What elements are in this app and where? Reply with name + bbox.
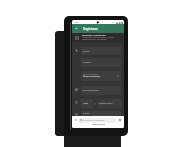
button[interactable]: Back	[72, 24, 124, 33]
staticText: Registrace	[83, 27, 99, 31]
staticText: Zadejte údaje, které jsou uvedeny na vaš…	[82, 36, 114, 38]
staticText: Registrace a zabezpečení	[82, 34, 106, 37]
staticText: Datum narození	[83, 89, 99, 92]
button[interactable]: Registrace a zabezpečení	[72, 33, 123, 42]
staticText: Jméno	[83, 50, 90, 53]
staticText: Země vydání dokladu	[83, 73, 99, 75]
staticText: 4G	[112, 21, 115, 24]
button[interactable]: Příjmení	[81, 58, 121, 67]
staticText: E-mail	[83, 112, 90, 115]
button[interactable]: +420	[81, 99, 93, 108]
staticText: +420	[83, 102, 88, 105]
button[interactable]: m.zkouska.cz/registrace	[78, 118, 116, 123]
button[interactable]: Back	[75, 27, 78, 30]
button[interactable]: Jméno	[81, 47, 121, 55]
button[interactable]: Země vydání dokladu	[81, 71, 121, 81]
button[interactable]: Datum narození	[81, 86, 121, 95]
staticText: Příjmení	[83, 61, 92, 64]
staticText: dokladu totožnosti. Více informací	[82, 38, 108, 40]
staticText: 17:35	[73, 21, 79, 24]
staticText: Mobilní telefon	[99, 102, 113, 105]
staticText: m.zkouska.cz/registrace	[83, 119, 105, 122]
staticText: Česká republika	[83, 75, 101, 78]
button[interactable]: E-mail	[81, 111, 121, 120]
button[interactable]: Mobilní telefon	[97, 99, 122, 108]
